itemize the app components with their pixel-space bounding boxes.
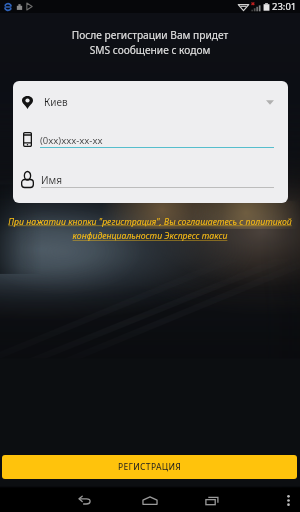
button[interactable]: Имя (13, 167, 288, 195)
button[interactable]: More options (279, 491, 297, 509)
staticText: 23:01 (272, 0, 297, 13)
button[interactable]: Киев (13, 83, 288, 121)
staticText: Имя (41, 173, 63, 187)
staticText: (0xx)xxx-xx-xx (40, 134, 103, 147)
button[interactable]: Back (71, 488, 99, 512)
staticText: РЕГИСТРАЦИЯ (118, 461, 182, 473)
button[interactable]: (0xx)xxx-xx-xx (13, 127, 288, 155)
staticText: После регистрации Вам придет SMS сообщен… (0, 28, 300, 57)
button[interactable]: Recent apps (198, 488, 226, 512)
staticText: При нажатии кнопки "регистрация", Вы сог… (6, 216, 294, 242)
button[interactable]: Home (136, 488, 164, 512)
button[interactable]: РЕГИСТРАЦИЯ (2, 455, 297, 479)
staticText: Киев (44, 95, 68, 109)
